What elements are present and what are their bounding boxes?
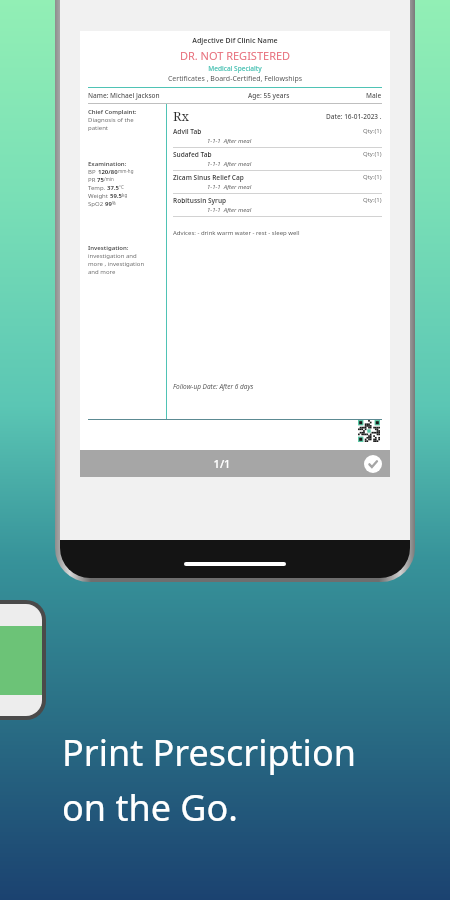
staticText: Certificates , Board-Certified, Fellowsh… [88,74,382,84]
staticText: Robitussin Syrup [173,196,363,205]
staticText: Rx [173,107,190,125]
staticText: Weight [88,192,110,200]
staticText: 1/1 [80,456,364,471]
staticText: Follow-up Date: After 6 days [173,382,254,391]
staticText: Medical Specialty [88,64,382,73]
staticText: Print Prescription [62,728,356,777]
staticText: Chief Complaint: [88,108,137,116]
staticText: % [112,200,116,206]
staticText: PR [88,176,97,184]
staticText: 99 [105,200,112,208]
staticText: 37.5 [107,184,119,192]
button[interactable]: Robitussin Syrup [173,196,382,219]
staticText: 59.5 [110,192,122,200]
staticText: Zicam Sinus Relief Cap [173,173,363,182]
staticText: 75 [97,176,104,184]
staticText: mm-hg [118,168,134,174]
staticText: Qty:(1) [363,173,382,181]
staticText: Male [366,91,382,100]
staticText: 120/80 [98,168,118,176]
staticText: Adjective Dif Clinic Name [88,36,382,46]
staticText: 1-1-1 After meal [207,137,382,145]
staticText: Qty:(1) [363,196,382,204]
staticText: investigation and more , investigation a… [88,252,145,276]
staticText: on the Go. [62,783,238,832]
staticText: Temp. [88,184,107,192]
staticText: Advil Tab [173,127,363,136]
button[interactable]: Zicam Sinus Relief Cap [173,173,382,196]
staticText: 1-1-1 After meal [207,160,382,168]
staticText: Qty:(1) [363,150,382,158]
staticText: BP [88,168,98,176]
staticText: 1-1-1 After meal [207,206,382,214]
button[interactable]: Confirm [364,455,382,473]
staticText: Examination: [88,160,127,168]
staticText: DR. NOT REGISTERED [88,48,382,63]
staticText: Age: 55 years [248,91,366,100]
staticText: Qty:(1) [363,127,382,135]
staticText: kg [122,192,128,198]
staticText: 1-1-1 After meal [207,183,382,191]
staticText: SpO2 [88,200,105,208]
staticText: Name: Michael Jackson [88,91,248,100]
button[interactable]: Sudafed Tab [173,150,382,173]
staticText: Sudafed Tab [173,150,363,159]
staticText: Advices: - drink warm water - rest - sle… [173,229,300,237]
staticText: °C [119,184,124,190]
button[interactable]: 1/1 [80,450,390,477]
staticText: Diagnosis of the patient [88,116,134,132]
staticText: Investigation: [88,244,129,252]
staticText: /min [104,176,114,182]
staticText: Date: 16-01-2023 . [326,112,382,121]
button[interactable]: Advil Tab [173,127,382,150]
